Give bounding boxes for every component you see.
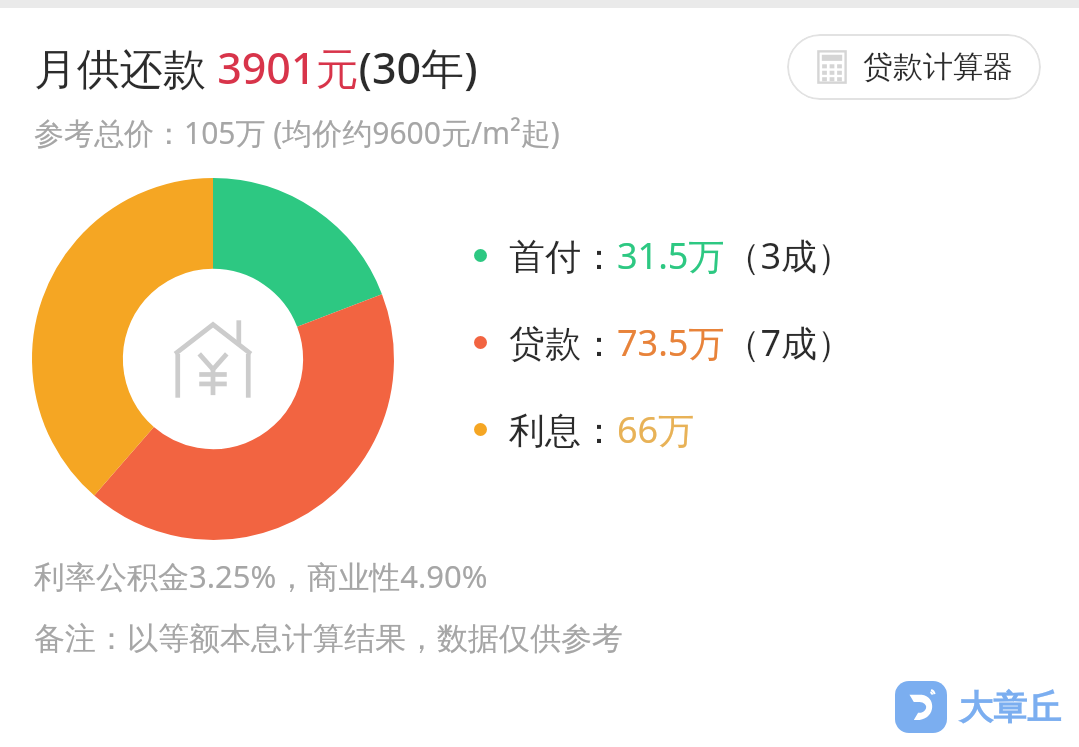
staticText: 利息：66万: [509, 405, 695, 454]
staticText: 备注：以等额本息计算结果，数据仅供参考: [34, 619, 623, 658]
staticText: 参考总价：105万 (均价约9600元/m²起): [34, 112, 560, 153]
staticText: 首付：31.5万（3成）: [509, 231, 854, 280]
button[interactable]: 贷款计算器: [787, 34, 1041, 100]
staticText: 贷款：73.5万（7成）: [509, 318, 854, 367]
staticText: 利率公积金3.25%，商业性4.90%: [34, 555, 488, 597]
staticText: 月供还款 3901元(30年): [34, 38, 478, 97]
staticText: 大章丘: [959, 686, 1061, 729]
staticText: 贷款计算器: [863, 48, 1013, 86]
